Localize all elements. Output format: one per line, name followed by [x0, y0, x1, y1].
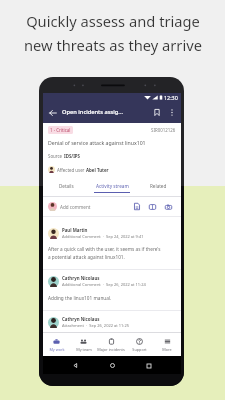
button[interactable]: Activity stream: [89, 183, 135, 196]
button[interactable]: My team: [70, 338, 97, 352]
button[interactable]: My work: [43, 338, 70, 352]
button[interactable]: Bookmark: [151, 107, 162, 118]
staticText: After a quick call with the user, it see…: [48, 246, 161, 252]
staticText: Quickly assess and triage: [26, 11, 200, 31]
staticText: Affected user: [57, 167, 86, 173]
button[interactable]: Home: [108, 361, 117, 370]
staticText: IDS/IPS: [64, 153, 81, 159]
staticText: a potential attack against linux101.: [48, 254, 125, 260]
button[interactable]: Back: [71, 361, 80, 370]
staticText: Adding the linux101 manual.: [48, 295, 112, 301]
button[interactable]: Add knowledge: [148, 202, 157, 211]
button[interactable]: Details: [43, 183, 89, 196]
staticText: Open incidents assig...: [62, 108, 123, 116]
staticText: Source: [48, 153, 64, 159]
staticText: 1 - Critical: [50, 127, 71, 133]
button[interactable]: Support: [125, 338, 153, 352]
staticText: Related: [150, 183, 167, 189]
staticText: Activity stream: [96, 183, 129, 189]
staticText: SIR0012126: [151, 127, 176, 133]
button[interactable]: Take photo: [164, 202, 173, 211]
staticText: Cathryn Nicolaus: [62, 275, 100, 281]
staticText: Details: [59, 183, 74, 189]
staticText: Cathryn Nicolaus: [62, 316, 100, 322]
button[interactable]: Attach file: [132, 202, 141, 211]
staticText: Additional Comment · Sep 26, 2022 at 11:…: [62, 282, 146, 287]
staticText: Abel Tuter: [86, 167, 109, 173]
button[interactable]: More: [153, 338, 181, 352]
staticText: 12:30: [164, 94, 178, 101]
button[interactable]: Major incidents: [97, 338, 125, 352]
staticText: Attachment · Sep 26, 2022 at 11:25: [62, 323, 130, 328]
staticText: Add comment: [60, 204, 91, 210]
staticText: Major incidents: [97, 347, 125, 352]
staticText: new threats as they arrive: [24, 35, 202, 55]
staticText: Paul Martin: [62, 227, 88, 233]
staticText: Support: [132, 347, 147, 352]
staticText: My work: [49, 347, 65, 352]
staticText: Additional Comment · Sep 24, 2022 at 9:4…: [62, 234, 144, 239]
staticText: My team: [76, 347, 92, 352]
button[interactable]: More options: [168, 109, 175, 116]
button[interactable]: Back: [47, 107, 58, 118]
button[interactable]: Recents: [144, 361, 153, 370]
button[interactable]: Related: [135, 183, 181, 196]
staticText: More: [162, 347, 172, 352]
staticText: Denial of service attack against linux10…: [48, 139, 146, 146]
